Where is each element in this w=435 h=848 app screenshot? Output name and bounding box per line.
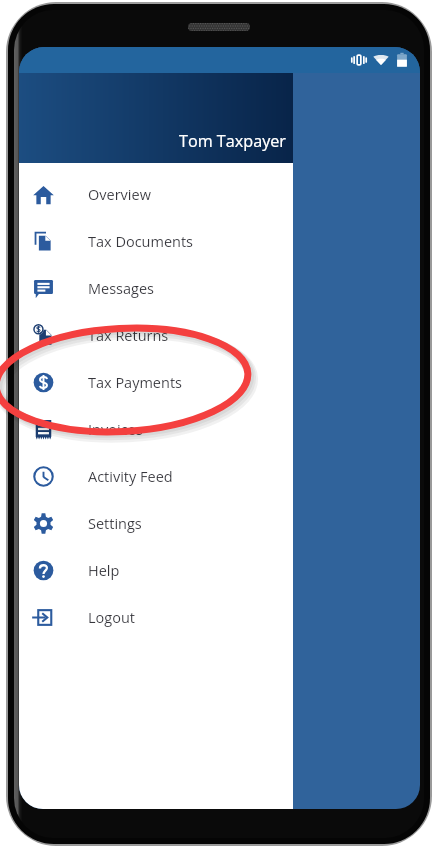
staticText: Logout [88,608,135,628]
button[interactable]: Help [19,547,293,594]
staticText: Tax Returns [88,326,169,346]
staticText: Messages [88,279,154,299]
button[interactable]: Tax Payments [19,359,293,406]
button[interactable]: Invoices [19,406,293,453]
staticText: Tax Payments [88,373,182,393]
button[interactable]: Settings [19,500,293,547]
staticText: Invoices [88,420,143,440]
button[interactable]: Tax Returns [19,312,293,359]
staticText: Tax Documents [88,232,194,252]
button[interactable]: Tom Taxpayer [19,73,293,163]
button[interactable]: Logout [19,594,293,641]
button[interactable]: Activity Feed [19,453,293,500]
staticText: Tom Taxpayer [179,130,286,152]
button[interactable]: Close navigation drawer [19,73,420,809]
staticText: Help [88,561,120,581]
button[interactable]: Messages [19,265,293,312]
staticText: Activity Feed [88,467,173,487]
button[interactable]: Tax Documents [19,218,293,265]
button[interactable]: Overview [19,171,293,218]
staticText: Settings [88,514,142,534]
staticText: Overview [88,185,151,205]
